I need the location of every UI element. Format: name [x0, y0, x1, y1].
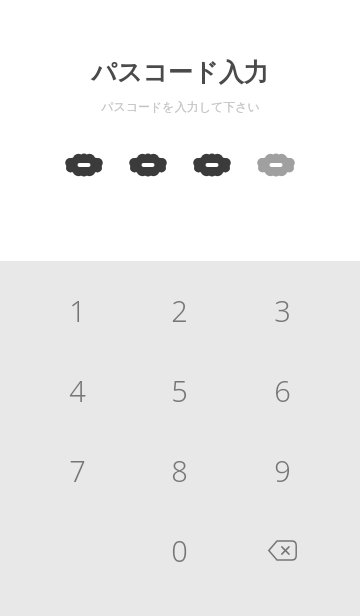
staticText: 3: [274, 291, 291, 330]
staticText: パスコード入力: [91, 57, 269, 88]
staticText: 2: [171, 291, 188, 330]
staticText: 0: [171, 531, 188, 570]
button[interactable]: 0: [128, 510, 231, 590]
staticText: 4: [69, 371, 86, 410]
staticText: 6: [274, 371, 291, 410]
staticText: パスコードを入力して下さい: [101, 99, 260, 114]
button[interactable]: 1: [26, 270, 128, 350]
button[interactable]: 3: [231, 270, 334, 350]
button[interactable]: 6: [231, 350, 334, 430]
staticText: 8: [171, 451, 188, 490]
button[interactable]: 9: [231, 430, 334, 510]
button[interactable]: 8: [128, 430, 231, 510]
button[interactable]: 5: [128, 350, 231, 430]
staticText: 7: [69, 451, 86, 490]
button[interactable]: 4: [26, 350, 128, 430]
staticText: 9: [274, 451, 291, 490]
staticText: 1: [69, 291, 86, 330]
button[interactable]: Delete: [231, 510, 334, 590]
button[interactable]: 2: [128, 270, 231, 350]
staticText: 5: [171, 371, 188, 410]
button[interactable]: 7: [26, 430, 128, 510]
